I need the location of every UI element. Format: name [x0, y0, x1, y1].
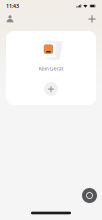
staticText: Kein Gerät — [38, 65, 63, 72]
staticText: 11:43 — [6, 2, 19, 10]
button[interactable]: Assistent — [82, 188, 97, 203]
button[interactable]: Hinzufügen — [85, 12, 99, 26]
button[interactable]: Gerät hinzufügen — [44, 82, 58, 96]
button[interactable]: Profil — [3, 12, 17, 26]
